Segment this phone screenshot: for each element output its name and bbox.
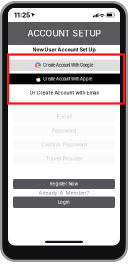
- button[interactable]: Create Account With Google: [8, 59, 120, 71]
- staticText: Login: [58, 200, 70, 205]
- staticText: Confirm Password: [41, 141, 87, 148]
- staticText: Create Account With Google: [43, 63, 93, 68]
- staticText: Or Create Account with Email: [29, 90, 98, 96]
- staticText: E-mail: [56, 113, 71, 120]
- staticText: Already A Member?: [38, 189, 89, 196]
- staticText: 11:25: [14, 11, 30, 19]
- staticText: Register Now: [49, 181, 78, 187]
- button[interactable]: Register Now: [13, 179, 115, 189]
- staticText: Password: [52, 127, 76, 134]
- button[interactable]: Create Account With Apple: [8, 73, 120, 84]
- button[interactable]: Login: [13, 196, 115, 208]
- button[interactable]: Or Create Account with Email: [8, 84, 120, 101]
- staticText: New User Account Set Up: [32, 46, 95, 53]
- staticText: Travel Provider: [45, 155, 82, 162]
- staticText: ACCOUNT SETUP: [27, 28, 100, 39]
- staticText: Create Account With Apple: [43, 76, 92, 81]
